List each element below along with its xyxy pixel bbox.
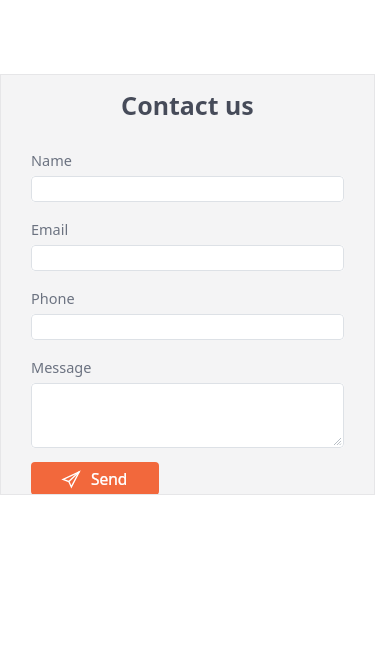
staticText: Name [31,150,72,170]
button[interactable]: Email input [31,245,344,271]
staticText: Send [91,468,128,489]
button[interactable]: Send [31,462,159,495]
button[interactable]: Phone input [31,314,344,340]
button[interactable]: Message input [31,383,344,448]
button[interactable]: Name input [31,176,344,202]
staticText: Email [31,219,69,239]
staticText: Message [31,357,92,377]
staticText: Contact us [0,88,375,122]
staticText: Phone [31,288,75,308]
